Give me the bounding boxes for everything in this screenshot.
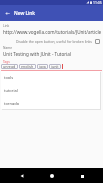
staticText: http://www.vogella.com/tutorials/JUnit/a… [3,29,102,35]
staticText: Tags [3,60,10,64]
staticText: tornado [4,101,20,106]
staticText: unread [3,64,16,69]
button[interactable]: tutorial [1,84,100,97]
button[interactable]: Back [17,171,27,181]
button[interactable]: tools [1,71,100,84]
staticText: java [39,64,46,69]
button[interactable]: junit [51,64,59,69]
button[interactable]: english [21,64,34,69]
button[interactable]: tornado [1,97,100,109]
button[interactable]: Recent apps [77,171,87,181]
staticText: 11:05 [93,0,102,5]
staticText: Link [3,24,10,28]
staticText: Name [3,46,12,50]
button[interactable]: Navigate up [1,7,13,19]
button[interactable]: Home [47,171,57,181]
staticText: tutorial [4,88,18,93]
button[interactable]: Disable the open button [94,38,101,45]
staticText: New Link [14,10,36,17]
button[interactable]: unread [3,64,16,69]
staticText: english [21,64,34,69]
button[interactable]: java [39,64,46,69]
staticText: Disable the open button, useful for brok… [16,39,92,44]
staticText: Unit Testing with JUnit - Tutorial [3,51,72,57]
staticText: junit [51,64,59,69]
staticText: tools [4,75,14,80]
